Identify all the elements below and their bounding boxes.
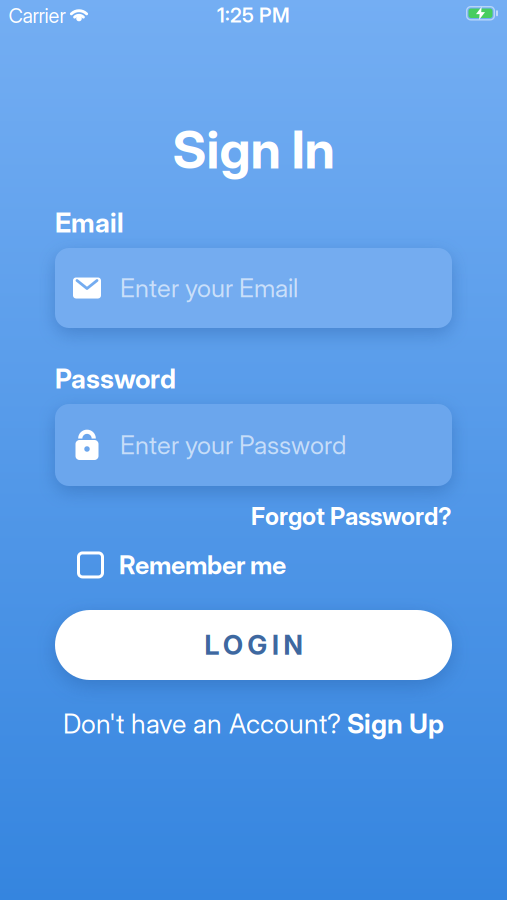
- staticText: 1:25 PM: [217, 3, 290, 27]
- button[interactable]: Enter your Password: [55, 404, 452, 486]
- staticText: Don't have an Account?: [63, 708, 341, 739]
- staticText: Enter your Email: [120, 273, 298, 303]
- button[interactable]: LOGIN: [55, 610, 452, 680]
- button[interactable]: Enter your Email: [55, 248, 452, 328]
- staticText: Remember me: [119, 550, 286, 580]
- button[interactable]: Forgot Password?: [251, 502, 452, 530]
- staticText: Carrier: [8, 4, 65, 28]
- staticText: Password: [55, 363, 176, 394]
- staticText: Enter your Password: [120, 430, 346, 460]
- staticText: Email: [55, 207, 124, 238]
- button[interactable]: Remember me: [77, 550, 286, 580]
- staticText: Sign In: [172, 119, 334, 180]
- button[interactable]: Sign Up: [347, 708, 444, 739]
- staticText: LOGIN: [204, 629, 302, 661]
- staticText: Forgot Password?: [251, 502, 452, 530]
- staticText: Sign Up: [347, 708, 444, 739]
